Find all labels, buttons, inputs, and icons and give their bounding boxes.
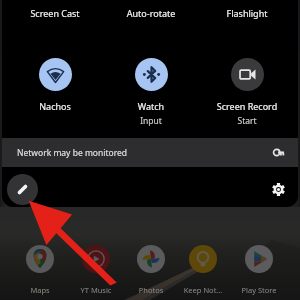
button[interactable]: Screen Cast bbox=[7, 2, 103, 24]
button[interactable]: Edit tiles bbox=[7, 174, 38, 205]
button[interactable]: Keep Not… bbox=[176, 245, 230, 295]
button[interactable]: Watch bbox=[103, 58, 199, 127]
button[interactable]: Settings bbox=[266, 177, 291, 202]
button[interactable]: Maps bbox=[13, 245, 67, 295]
staticText: YT Music bbox=[69, 285, 123, 295]
staticText: Watch bbox=[103, 100, 199, 112]
staticText: Maps bbox=[13, 285, 67, 295]
staticText: Photos bbox=[124, 285, 178, 295]
staticText: Keep Not… bbox=[176, 285, 230, 295]
button[interactable]: Nachos bbox=[7, 58, 103, 112]
staticText: Auto-rotate bbox=[103, 7, 199, 19]
button[interactable]: YT Music bbox=[69, 245, 123, 295]
staticText: Input bbox=[103, 115, 199, 127]
button[interactable]: Auto-rotate bbox=[103, 2, 199, 24]
button[interactable]: Flashlight bbox=[199, 2, 295, 24]
staticText: Play Store bbox=[232, 285, 286, 295]
button[interactable]: Play Store bbox=[232, 245, 286, 295]
staticText: Nachos bbox=[7, 100, 103, 112]
button[interactable]: Network may be monitored bbox=[2, 138, 298, 167]
staticText: Screen Cast bbox=[7, 7, 103, 19]
button[interactable]: Screen Record bbox=[199, 58, 295, 127]
staticText: Network may be monitored bbox=[17, 147, 128, 159]
staticText: Flashlight bbox=[199, 7, 295, 19]
staticText: Screen Record bbox=[199, 100, 295, 112]
button[interactable]: Photos bbox=[124, 245, 178, 295]
staticText: Start bbox=[199, 115, 295, 127]
